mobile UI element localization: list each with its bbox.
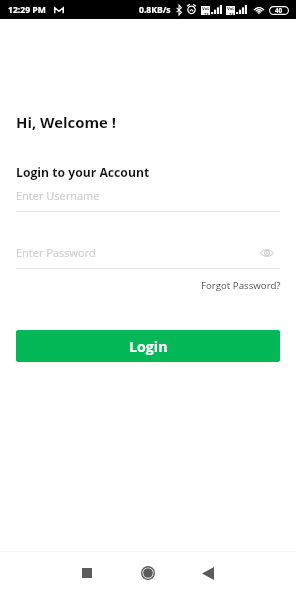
staticText: TE <box>229 12 234 15</box>
button[interactable]: Recent apps <box>67 553 107 592</box>
staticText: Enter Username <box>16 188 100 203</box>
button[interactable]: Home <box>128 553 168 592</box>
button[interactable]: Show password <box>256 242 278 264</box>
staticText: Forgot Password? <box>201 279 281 292</box>
button[interactable]: Login <box>16 330 280 362</box>
button[interactable]: Enter Password <box>16 243 280 269</box>
staticText: Enter Password <box>16 245 96 260</box>
staticText: 0.8KB/s <box>139 4 171 16</box>
button[interactable]: Enter Username <box>16 186 280 212</box>
button[interactable]: Forgot Password? <box>200 275 282 296</box>
staticText: Hi, Welcome ! <box>16 112 116 132</box>
staticText: VoL <box>202 6 210 12</box>
staticText: Login <box>129 337 168 356</box>
staticText: VoL <box>227 6 235 12</box>
staticText: Login to your Account <box>16 164 150 181</box>
staticText: 12:29 PM <box>8 4 46 16</box>
button[interactable]: Back <box>188 553 228 592</box>
staticText: 40 <box>275 6 283 15</box>
staticText: TE <box>204 12 209 15</box>
